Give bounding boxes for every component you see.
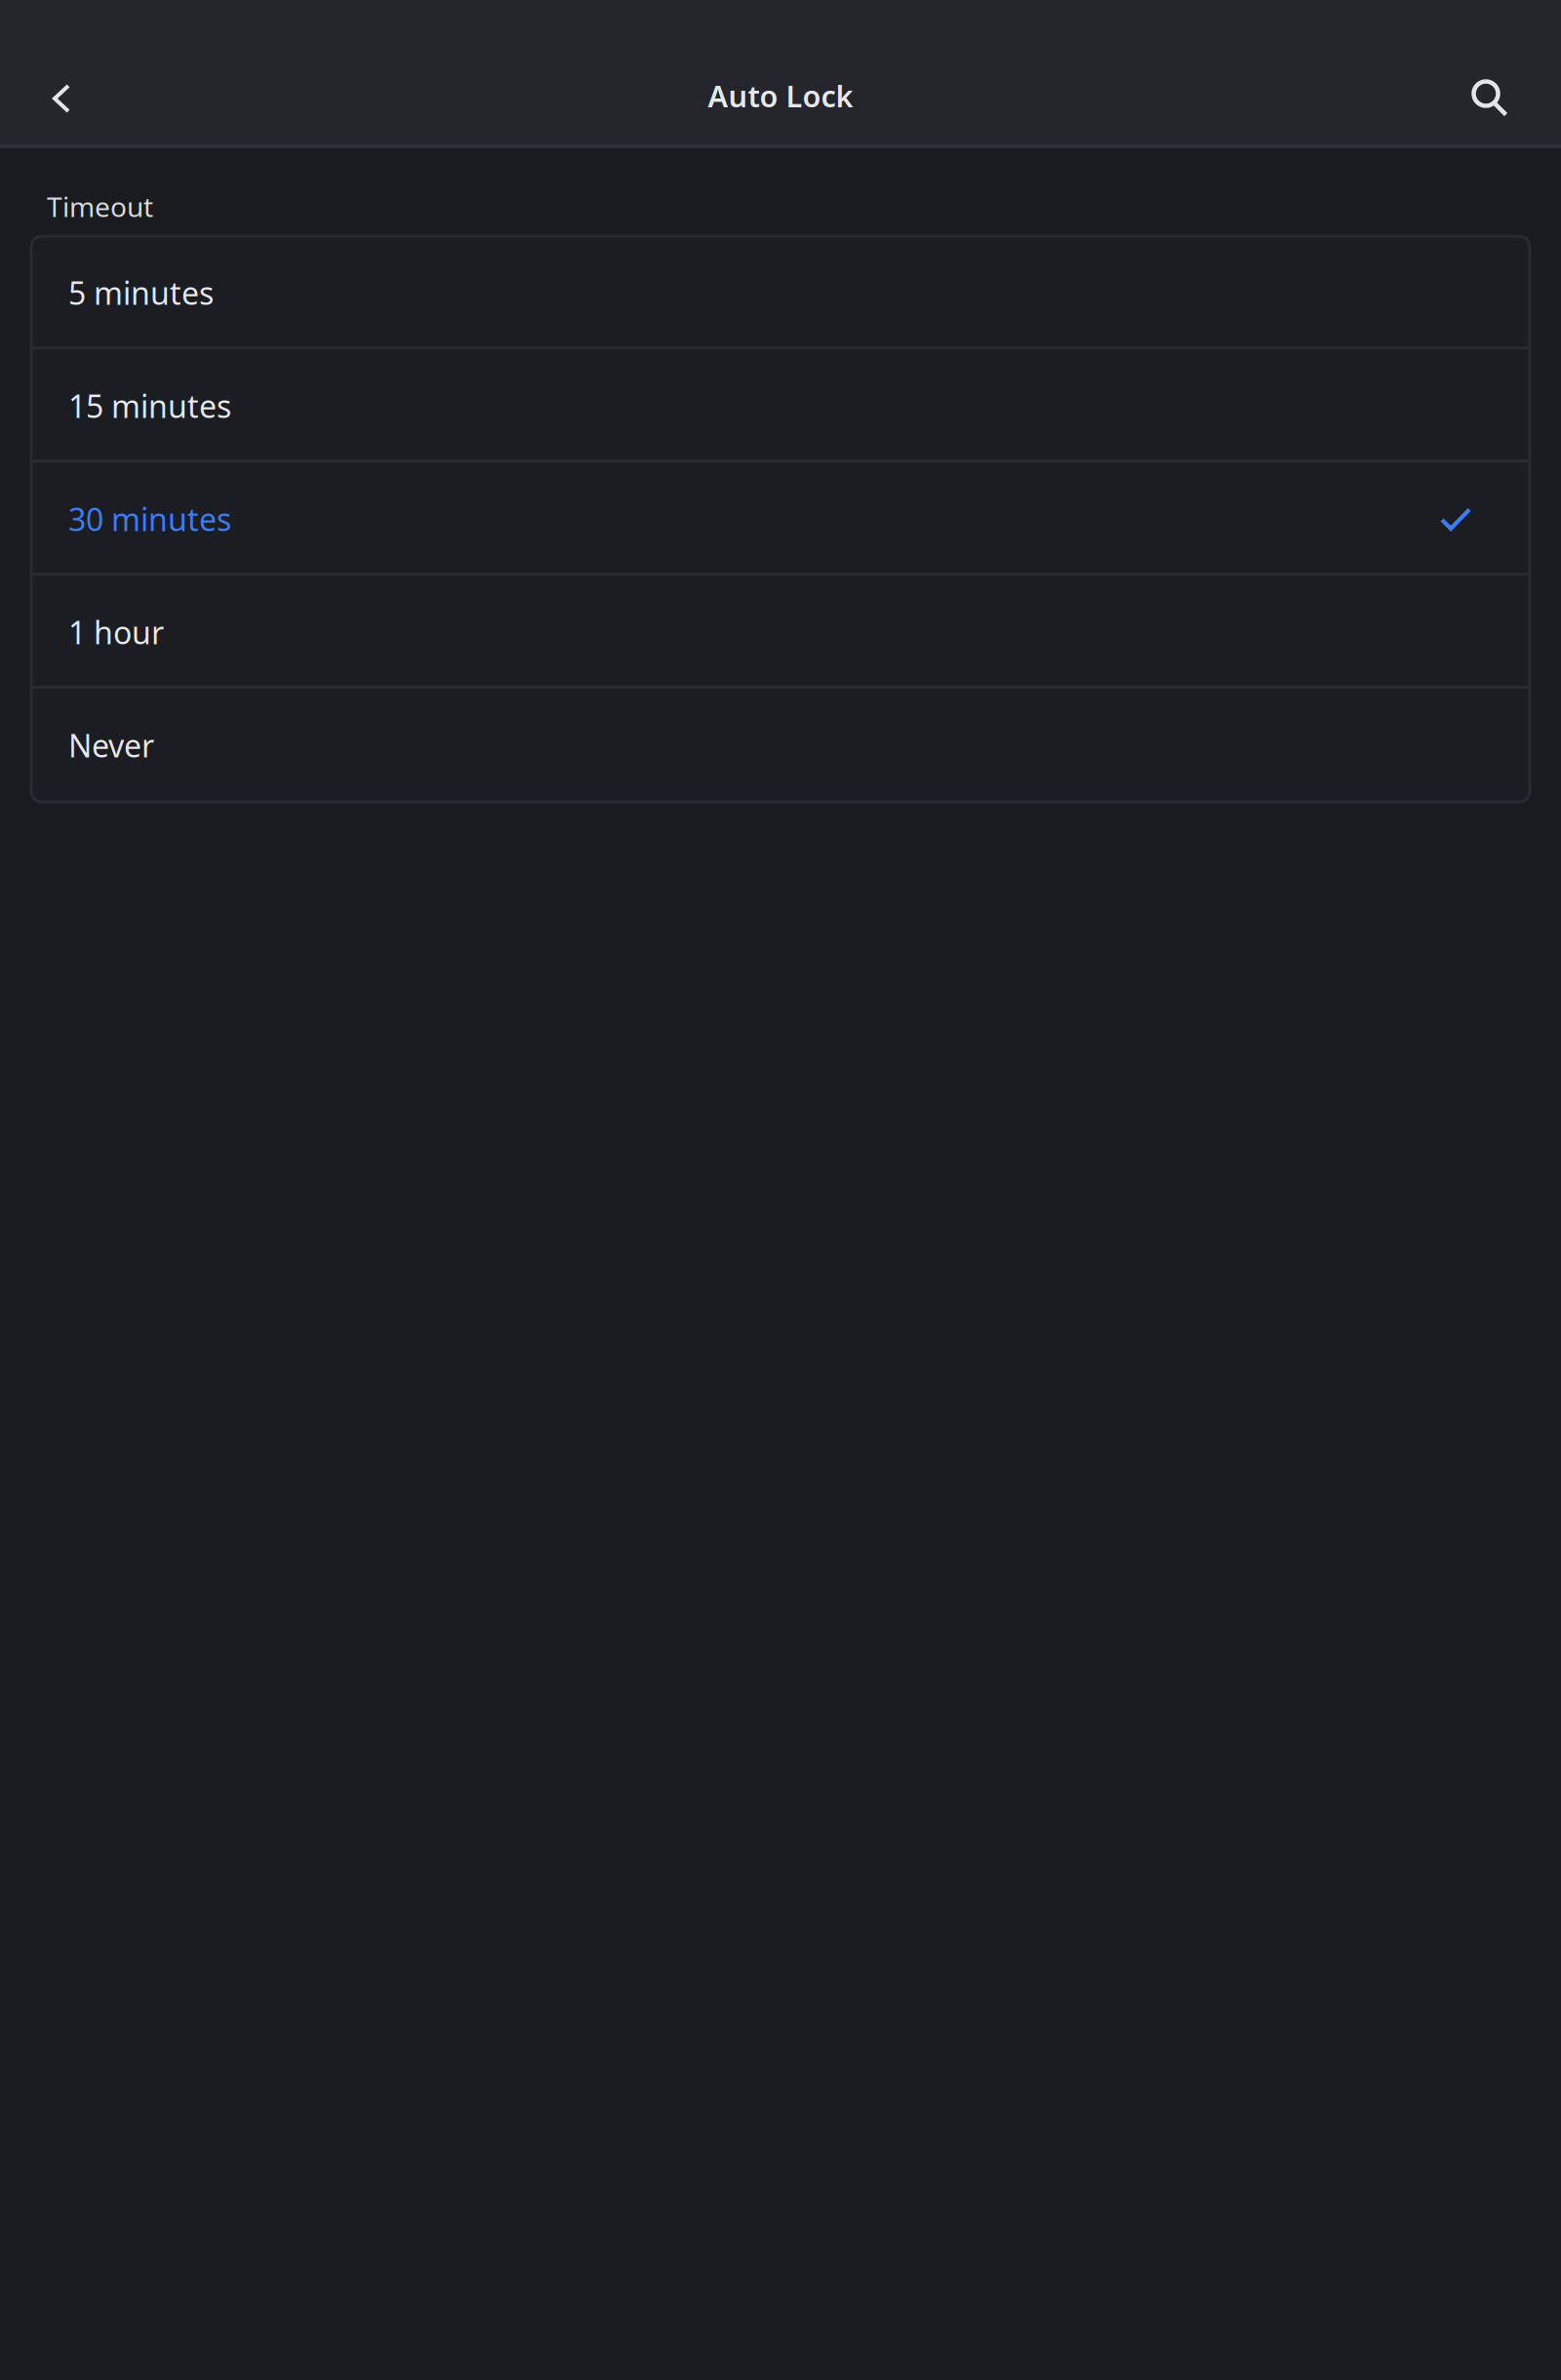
button[interactable]: 30 minutes [31, 463, 1530, 576]
staticText: 1 hour [68, 611, 164, 653]
button[interactable]: 5 minutes [31, 236, 1530, 349]
button[interactable]: Never [31, 689, 1530, 802]
button[interactable]: 15 minutes [31, 349, 1530, 463]
staticText: 5 minutes [68, 272, 214, 313]
staticText: 15 minutes [68, 385, 231, 427]
staticText: Auto Lock [708, 76, 853, 115]
staticText: Timeout [47, 188, 153, 225]
staticText: Never [68, 725, 154, 766]
button[interactable]: 1 hour [31, 576, 1530, 689]
button[interactable]: Search [1448, 49, 1532, 148]
button[interactable]: Back [20, 49, 103, 148]
staticText: 30 minutes [68, 498, 231, 540]
